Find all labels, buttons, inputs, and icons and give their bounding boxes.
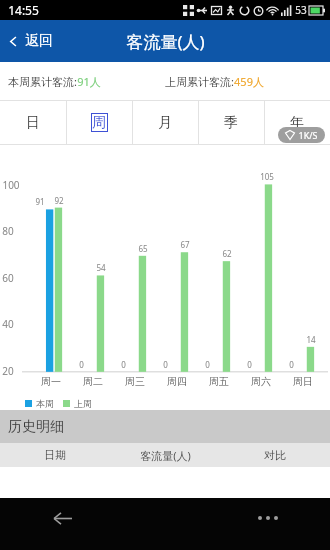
staticText: 1K/S: [298, 129, 318, 141]
staticText: 62: [222, 248, 232, 259]
staticText: 14: [306, 334, 316, 345]
button[interactable]: 月: [132, 101, 198, 144]
staticText: 历史明细: [8, 418, 64, 436]
button[interactable]: 返回: [0, 26, 65, 56]
staticText: 0: [163, 359, 168, 370]
staticText: 65: [138, 243, 148, 254]
staticText: 上周: [74, 398, 92, 409]
staticText: 周五: [209, 375, 229, 388]
button[interactable]: Back: [45, 501, 79, 535]
staticText: 周六: [251, 375, 271, 388]
staticText: 周一: [41, 375, 61, 388]
staticText: 105: [260, 171, 274, 182]
staticText: 54: [96, 262, 106, 273]
staticText: 周日: [293, 375, 313, 388]
staticText: 周四: [167, 375, 187, 388]
button[interactable]: 日: [0, 101, 66, 144]
staticText: 92: [54, 195, 64, 206]
staticText: 客流量(人): [126, 30, 205, 53]
staticText: 20: [2, 364, 14, 378]
staticText: 91人: [77, 74, 101, 89]
button[interactable]: Menu: [251, 501, 285, 535]
staticText: 日: [26, 114, 40, 132]
staticText: 周: [92, 114, 106, 132]
staticText: 40: [2, 317, 14, 331]
staticText: 0: [79, 359, 84, 370]
staticText: 459人: [234, 74, 264, 89]
staticText: 0: [247, 359, 252, 370]
staticText: 60: [2, 271, 14, 285]
staticText: 80: [2, 224, 14, 238]
button[interactable]: 周: [66, 101, 132, 144]
button[interactable]: 年: [264, 101, 330, 144]
staticText: 本周累计客流:: [8, 74, 77, 89]
staticText: 53: [295, 3, 307, 17]
staticText: 91: [35, 196, 45, 207]
staticText: 0: [121, 359, 126, 370]
staticText: 67: [180, 239, 190, 250]
button[interactable]: 季: [198, 101, 264, 144]
staticText: 季: [224, 114, 238, 132]
staticText: 对比: [264, 448, 286, 462]
staticText: 上周累计客流:: [165, 74, 234, 89]
staticText: 周三: [125, 375, 145, 388]
staticText: 0: [205, 359, 210, 370]
staticText: 周二: [83, 375, 103, 388]
staticText: 100: [2, 178, 20, 192]
staticText: 月: [158, 114, 172, 132]
staticText: 日期: [44, 448, 66, 462]
staticText: 客流量(人): [140, 448, 191, 463]
staticText: 返回: [25, 32, 53, 50]
staticText: 14:55: [8, 2, 39, 18]
staticText: 本周: [36, 398, 54, 409]
staticText: 0: [289, 359, 294, 370]
staticText: 年: [290, 114, 304, 132]
